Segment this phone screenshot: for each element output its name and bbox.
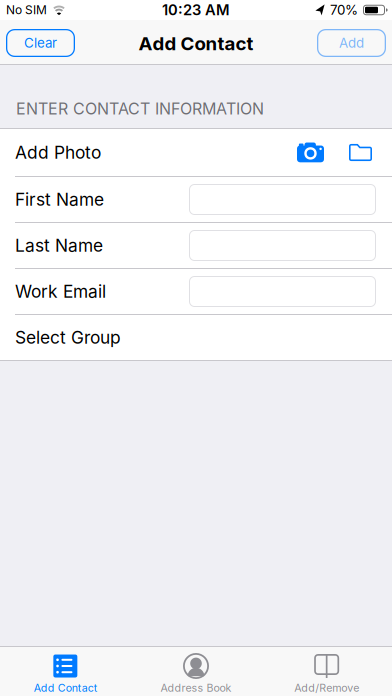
staticText: ENTER CONTACT INFORMATION [16,99,264,118]
button[interactable]: Add Contact [0,647,131,696]
staticText: No SIM [6,3,47,17]
button[interactable]: Add/Remove [261,647,392,696]
button[interactable]: Add [317,29,386,57]
button[interactable]: First Name [189,184,376,215]
staticText: Add Contact [138,32,253,54]
staticText: Select Group [15,327,121,348]
staticText: 10:23 AM [162,1,230,19]
staticText: 70% [330,2,358,18]
button[interactable]: Choose Photo [349,144,372,161]
button[interactable]: Select Group [0,315,392,360]
button[interactable]: Clear [6,29,75,57]
button[interactable]: Address Book [131,647,261,696]
staticText: Address Book [160,681,231,694]
staticText: Clear [24,35,57,51]
button[interactable]: Work Email [189,276,376,307]
staticText: Add/Remove [294,681,359,694]
button[interactable]: Last Name [189,230,376,261]
button[interactable]: Take Photo [297,142,324,162]
staticText: First Name [15,189,104,210]
staticText: Add Photo [15,142,101,163]
staticText: Last Name [15,235,103,256]
staticText: Add Contact [34,681,97,694]
staticText: Work Email [15,281,106,302]
staticText: Add [339,35,364,51]
